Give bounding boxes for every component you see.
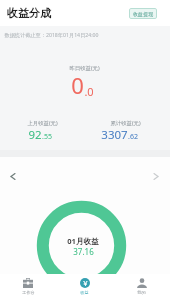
staticText: 收益分成 (7, 6, 51, 20)
staticText: .62 (128, 132, 138, 142)
staticText: 累计收益(元) (110, 119, 141, 126)
button[interactable]: 工作台 (0, 274, 56, 295)
staticText: 0 (71, 70, 84, 100)
button[interactable]: Previous month (6, 169, 20, 183)
staticText: .55 (42, 132, 52, 142)
staticText: 01月收益 (67, 236, 99, 246)
staticText: 上月收益(元) (27, 119, 58, 126)
staticText: 收益提现 (133, 11, 153, 17)
staticText: 收益 (80, 290, 89, 295)
button[interactable]: ¥ (56, 274, 113, 295)
staticText: 3307 (101, 127, 128, 143)
staticText: 我的 (137, 290, 146, 295)
staticText: .0 (84, 84, 94, 99)
staticText: 昨日收益(元) (69, 64, 100, 71)
button[interactable]: 收益提现 (129, 8, 157, 19)
staticText: 工作台 (22, 290, 35, 295)
staticText: 数据统计截止至：2018年01月14日24:00 (4, 31, 99, 38)
button[interactable]: Next month (149, 169, 163, 183)
staticText: 37.16 (73, 246, 94, 257)
button[interactable]: 我的 (113, 274, 170, 295)
staticText: ¥ (83, 278, 88, 288)
staticText: 92 (28, 127, 42, 143)
